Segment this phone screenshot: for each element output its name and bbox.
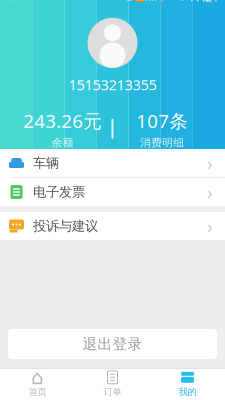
staticText: 15153213355 (68, 75, 156, 94)
staticText: 首页 (28, 386, 46, 398)
button[interactable]: 退出登录 (8, 329, 217, 359)
staticText: › (207, 151, 213, 175)
button[interactable]: 订单 (75, 368, 150, 400)
staticText: 订单 (103, 386, 121, 398)
staticText: 消费明细 (140, 136, 184, 149)
staticText: 余额 (52, 136, 74, 149)
button[interactable]: 243.26元 (14, 108, 111, 149)
staticText: › (207, 180, 213, 204)
button[interactable]: 投诉与建议 (0, 212, 225, 240)
button[interactable]: 车辆 (0, 149, 225, 177)
button[interactable]: 我的 (150, 368, 225, 400)
staticText: 107条 (136, 108, 188, 133)
button[interactable]: 电子发票 (0, 178, 225, 206)
staticText: 车辆 (33, 155, 59, 171)
staticText: 243.26元 (23, 108, 102, 133)
staticText: .ıll (145, 0, 157, 3)
button[interactable]: 107条 (113, 108, 211, 149)
button[interactable]: ⌂ (0, 368, 75, 400)
staticText: ⬍ (6, 0, 15, 3)
staticText: 我的 (178, 386, 196, 398)
staticText: ⚡ (157, 0, 169, 2)
staticText: 📶 (133, 0, 145, 2)
staticText: ⌂ (31, 366, 44, 389)
staticText: ◎ (125, 0, 133, 2)
staticText: 退出登录 (82, 335, 142, 353)
staticText: 电子发票 (33, 184, 85, 200)
staticText: 17:21 (188, 0, 219, 5)
staticText: 投诉与建议 (33, 218, 98, 234)
staticText: › (207, 214, 213, 238)
